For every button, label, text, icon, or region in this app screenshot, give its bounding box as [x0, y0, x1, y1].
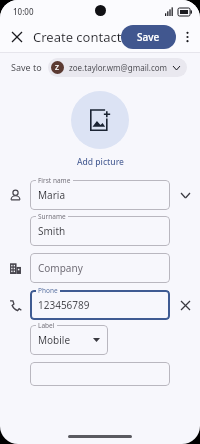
button[interactable]: Add picture	[71, 91, 129, 149]
staticText: Z	[55, 63, 60, 73]
staticText: Maria	[38, 188, 65, 202]
staticText: Smith	[38, 224, 66, 238]
staticText: Mobile	[38, 333, 71, 347]
button[interactable]: Company	[30, 253, 170, 283]
staticText: zoe.taylor.wm@gmail.com	[69, 62, 168, 73]
button[interactable]: Maria	[30, 180, 170, 210]
staticText: 123456789	[38, 298, 90, 312]
button[interactable]: Close	[5, 25, 29, 49]
button[interactable]: Expand name fields	[174, 184, 196, 206]
staticText: Phone	[38, 286, 58, 295]
button[interactable]: Smith	[30, 216, 170, 246]
button[interactable]: 123456789	[30, 290, 170, 320]
staticText: 10:00	[13, 6, 34, 17]
staticText: Surname	[38, 212, 66, 221]
staticText: Save	[137, 30, 160, 44]
button[interactable]: Clear phone	[174, 294, 196, 316]
staticText: First name	[38, 176, 71, 185]
staticText: Company	[38, 261, 83, 275]
staticText: Label	[38, 321, 55, 330]
staticText: Add picture	[77, 156, 124, 168]
staticText: Save to	[11, 61, 42, 73]
button[interactable]: Z	[48, 58, 187, 77]
button[interactable]: Save	[121, 25, 176, 49]
button[interactable]: Mobile	[30, 325, 108, 355]
staticText: Create contact	[33, 28, 122, 46]
button[interactable]: More options	[176, 26, 198, 48]
button[interactable]	[30, 362, 170, 386]
